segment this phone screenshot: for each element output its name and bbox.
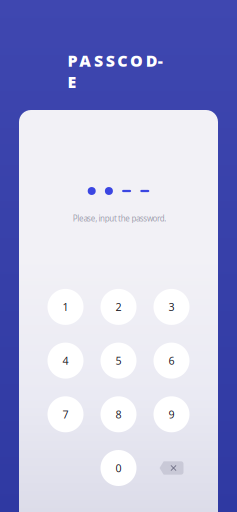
button[interactable]: 0 — [100, 450, 136, 486]
staticText: 0 — [115, 461, 121, 475]
button[interactable]: 1 — [47, 289, 83, 325]
button[interactable]: 6 — [153, 343, 189, 379]
staticText: 6 — [168, 353, 174, 368]
button[interactable]: 9 — [153, 396, 189, 432]
button[interactable]: 5 — [100, 343, 136, 379]
button[interactable]: 7 — [47, 396, 83, 432]
staticText: 5 — [115, 353, 121, 368]
staticText: 9 — [168, 407, 174, 421]
staticText: 3 — [168, 300, 174, 314]
staticText: 2 — [115, 300, 121, 314]
staticText: PASSCODE — [67, 50, 169, 71]
staticText: 4 — [62, 353, 68, 368]
button[interactable]: 4 — [47, 343, 83, 379]
button[interactable]: 3 — [153, 289, 189, 325]
button[interactable]: 8 — [100, 396, 136, 432]
staticText: Please, input the password. — [73, 213, 166, 224]
button[interactable]: 2 — [100, 289, 136, 325]
button[interactable]: Delete — [153, 450, 189, 486]
staticText: 7 — [62, 407, 68, 421]
staticText: 1 — [62, 300, 68, 314]
staticText: 8 — [115, 407, 121, 421]
